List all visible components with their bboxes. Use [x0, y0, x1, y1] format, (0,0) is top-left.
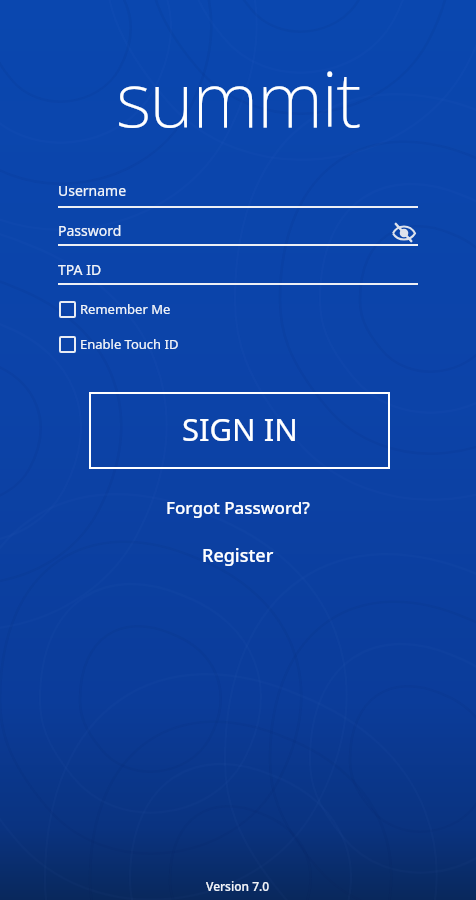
staticText: Enable Touch ID — [80, 335, 179, 353]
staticText: summit — [116, 46, 360, 150]
button[interactable]: SIGN IN — [89, 392, 390, 469]
staticText: Remember Me — [80, 300, 171, 318]
button[interactable]: TPA ID — [58, 260, 418, 285]
button[interactable] — [392, 224, 416, 242]
staticText: Version 7.0 — [206, 878, 270, 894]
button[interactable]: Remember Me — [59, 300, 171, 318]
button[interactable]: Enable Touch ID — [59, 335, 179, 353]
button[interactable]: Register — [202, 543, 274, 568]
staticText: Password — [58, 221, 122, 240]
staticText: SIGN IN — [182, 408, 298, 450]
button[interactable]: Username — [58, 181, 418, 208]
staticText: TPA ID — [58, 260, 102, 279]
button[interactable]: Password — [58, 221, 418, 246]
button[interactable]: Forgot Password? — [166, 496, 310, 519]
staticText: Username — [58, 181, 127, 200]
